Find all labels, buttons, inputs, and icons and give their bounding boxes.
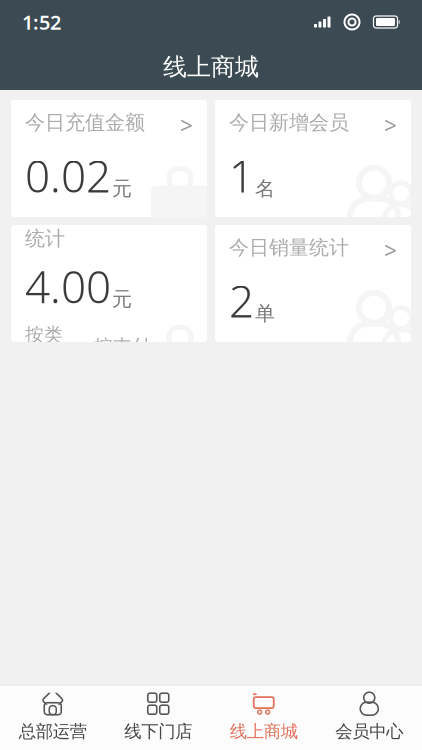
staticText: 1:52 (22, 9, 61, 35)
staticText: 按支付 (94, 335, 151, 358)
button[interactable]: 今日销量统计 (215, 225, 411, 342)
staticText: > (384, 110, 397, 140)
button[interactable]: 今日充值金额 (11, 100, 207, 217)
button[interactable]: 会员中心 (316, 686, 422, 750)
staticText: 单 (255, 301, 275, 326)
staticText: 今日销量统计 (229, 235, 349, 260)
staticText: 名 (255, 176, 275, 201)
staticText: 1 (229, 146, 254, 205)
staticText: 线上商城 (163, 52, 259, 82)
staticText: (不含充值) (105, 202, 179, 223)
staticText: 线上商城 (230, 721, 298, 742)
staticText: 0.02 (25, 146, 111, 205)
staticText: > (154, 335, 164, 358)
staticText: > (66, 335, 76, 358)
button[interactable]: 线上商城 (211, 686, 316, 750)
staticText: 按类别 (25, 323, 63, 369)
staticText: > (180, 110, 193, 140)
staticText: 总部运营 (19, 721, 87, 742)
staticText: 2 (229, 271, 254, 330)
staticText: 元 (112, 176, 132, 201)
staticText: 线下门店 (124, 721, 192, 742)
staticText: 今日收款统计 (25, 202, 105, 251)
staticText: 今日新增会员 (229, 110, 349, 135)
button[interactable]: 今日收款统计 (11, 225, 207, 342)
staticText: 元 (112, 287, 132, 311)
button[interactable]: 今日新增会员 (215, 100, 411, 217)
staticText: > (384, 235, 397, 265)
staticText: 会员中心 (335, 721, 403, 742)
staticText: 今日充值金额 (25, 110, 145, 135)
button[interactable]: 线上商城 (0, 44, 422, 90)
button[interactable]: 线下门店 (105, 686, 211, 750)
staticText: 4.00 (25, 257, 111, 315)
button[interactable]: 总部运营 (0, 686, 105, 750)
